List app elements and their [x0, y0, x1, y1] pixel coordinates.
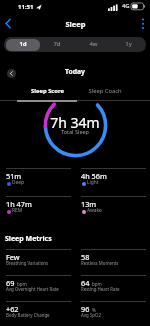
staticText: REM: [12, 207, 23, 214]
button[interactable]: 13m: [81, 196, 146, 223]
staticText: Avg SpO2: [81, 312, 101, 318]
staticText: bpm: [17, 281, 27, 287]
staticText: Avg Overnight Heart Rate: [6, 286, 59, 292]
staticText: Deep: [12, 179, 24, 186]
staticText: bpm: [92, 281, 102, 287]
button[interactable]: 69: [6, 275, 71, 302]
staticText: 13m: [81, 199, 97, 209]
staticText: Sleep Coach: [88, 87, 122, 95]
staticText: 69: [6, 278, 15, 288]
button[interactable]: [0, 82, 75, 102]
button[interactable]: [75, 82, 150, 102]
staticText: +62: [6, 304, 19, 314]
staticText: %: [92, 307, 96, 313]
staticText: Light: [87, 179, 99, 186]
staticText: Body Battery Change: [6, 312, 50, 318]
staticText: 64: [81, 278, 90, 288]
staticText: Total Sleep: [61, 128, 89, 135]
staticText: Sleep: [65, 19, 86, 29]
button[interactable]: 58: [81, 249, 146, 276]
button[interactable]: [7, 69, 16, 78]
staticText: Sleep Metrics: [5, 234, 52, 244]
staticText: Resting Heart Rate: [81, 286, 120, 292]
button[interactable]: 1h 47m: [6, 196, 71, 223]
staticText: Few: [6, 252, 20, 262]
staticText: 7d: [53, 40, 61, 48]
staticText: Restless Moments: [81, 260, 119, 266]
button[interactable]: [40, 37, 75, 52]
staticText: 7h 34m: [50, 113, 100, 132]
staticText: 4G: [122, 2, 130, 10]
staticText: Breathing Variations: [6, 260, 49, 266]
button[interactable]: [6, 39, 40, 51]
button[interactable]: 64: [81, 275, 146, 302]
button[interactable]: [136, 14, 150, 34]
staticText: Today: [65, 67, 85, 76]
button[interactable]: 96: [81, 301, 146, 326]
button[interactable]: [0, 14, 20, 34]
staticText: 11:51: [18, 3, 34, 11]
button[interactable]: 4h 56m: [81, 168, 146, 195]
staticText: 1h 47m: [6, 199, 32, 209]
staticText: 4w: [89, 40, 98, 48]
staticText: Awake: [87, 207, 102, 214]
staticText: 4h 56m: [81, 171, 107, 181]
button[interactable]: Few: [6, 249, 71, 276]
staticText: Sleep Score: [31, 87, 64, 95]
staticText: 58: [81, 252, 90, 262]
button[interactable]: +62: [6, 301, 71, 326]
button[interactable]: 51m: [6, 168, 71, 195]
staticText: 1y: [125, 40, 132, 48]
staticText: 51m: [6, 171, 22, 181]
button[interactable]: [75, 37, 110, 52]
button[interactable]: [110, 37, 146, 52]
staticText: 1d: [19, 40, 27, 48]
staticText: 96: [81, 304, 90, 314]
